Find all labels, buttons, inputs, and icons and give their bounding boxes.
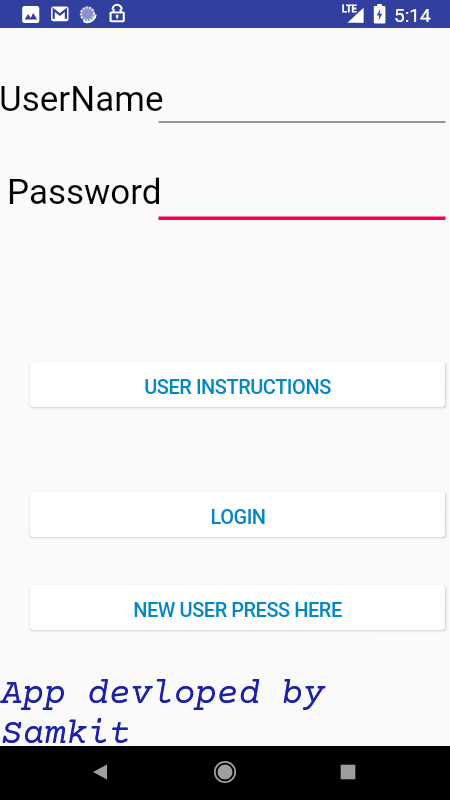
button[interactable]: Password (7, 172, 177, 206)
staticText: LTE (342, 4, 357, 15)
staticText: USER INSTRUCTIONS (144, 375, 331, 398)
staticText: 5:14 (394, 4, 431, 26)
button[interactable]: UserName (0, 79, 169, 113)
button[interactable]: Back (73, 746, 127, 800)
button[interactable]: LOGIN (30, 492, 445, 537)
staticText: UserName (0, 79, 164, 113)
staticText: Password (7, 172, 162, 206)
button[interactable]: NEW USER PRESS HERE (30, 585, 445, 630)
button[interactable]: USER INSTRUCTIONS (30, 362, 445, 407)
staticText: App devloped by Samkit (1, 675, 450, 755)
staticText: NEW USER PRESS HERE (133, 598, 342, 621)
staticText: LOGIN (210, 505, 266, 528)
button[interactable]: Recent apps (321, 746, 375, 800)
button[interactable]: Home (198, 746, 252, 800)
staticText: App devloped by Samkit (1, 675, 450, 755)
